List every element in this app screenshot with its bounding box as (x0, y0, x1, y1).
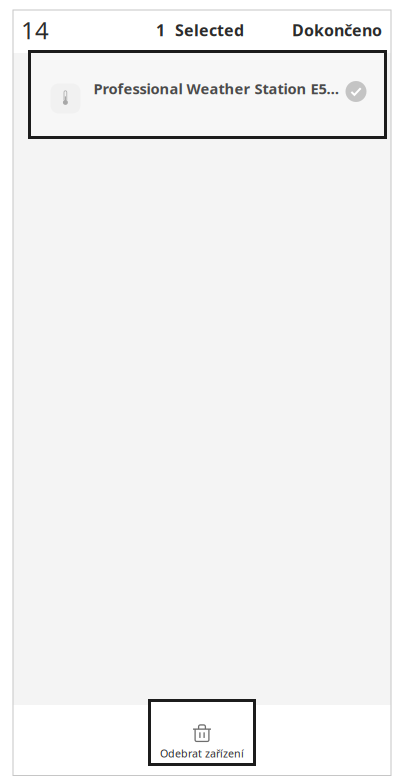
staticText: Odebrat zařízení (160, 746, 244, 760)
staticText: Selected (175, 19, 244, 41)
staticText: 14 (21, 14, 49, 46)
button[interactable]: Professional Weather Station E5059 (29, 51, 385, 137)
button[interactable]: Odebrat zařízení (149, 700, 254, 764)
button[interactable]: 14 (21, 9, 59, 47)
staticText: Professional Weather Station E5059 (93, 79, 344, 98)
button[interactable]: Dokončeno (282, 14, 382, 42)
staticText: Dokončeno (292, 19, 382, 41)
staticText: 1 (156, 19, 165, 41)
